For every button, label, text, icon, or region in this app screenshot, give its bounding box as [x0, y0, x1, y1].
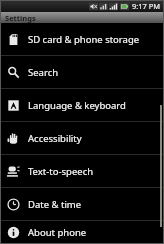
- staticText: Search: [28, 66, 59, 79]
- staticText: Accessibility: [28, 132, 82, 145]
- other: Accessibility: [7, 132, 20, 145]
- other: SD card and phone storage: [7, 33, 20, 46]
- staticText: Language & keyboard: [28, 99, 126, 112]
- staticText: About phone: [28, 226, 87, 239]
- staticText: Settings: [5, 13, 36, 23]
- other: Language and keyboard: [7, 99, 20, 112]
- button[interactable]: Text to speech: [0, 155, 164, 187]
- other: Text to speech: [7, 165, 20, 178]
- other: About phone: [7, 226, 20, 239]
- button[interactable]: SD card and phone storage: [0, 23, 164, 55]
- button[interactable]: Accessibility: [0, 122, 164, 154]
- staticText: 9:17 PM: [132, 1, 161, 11]
- other: Date and time: [7, 198, 20, 211]
- button[interactable]: Date and time: [0, 188, 164, 220]
- staticText: SD card & phone storage: [28, 33, 140, 46]
- staticText: Text-to-speech: [28, 165, 94, 178]
- button[interactable]: Search: [0, 56, 164, 88]
- button[interactable]: About phone: [0, 221, 164, 244]
- other: Search: [7, 66, 20, 79]
- staticText: Date & time: [28, 198, 82, 211]
- button[interactable]: Language and keyboard: [0, 89, 164, 121]
